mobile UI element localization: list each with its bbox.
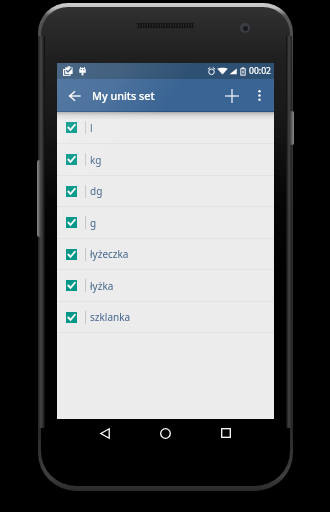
button[interactable]: g (57, 207, 274, 238)
staticText: dg (90, 184, 103, 198)
staticText: łyżeczka (90, 247, 129, 261)
staticText: łyżka (90, 279, 114, 293)
button[interactable]: szklanka (57, 302, 274, 332)
button[interactable]: Home (153, 419, 177, 447)
button[interactable]: Navigate up (63, 79, 86, 112)
staticText: My units set (92, 88, 155, 103)
button[interactable]: Back (93, 419, 117, 447)
staticText: l (90, 121, 93, 135)
button[interactable]: kg (57, 144, 274, 175)
button[interactable]: l (57, 112, 274, 143)
button[interactable]: łyżka (57, 270, 274, 301)
staticText: 00:02 (249, 65, 271, 77)
button[interactable]: Add (216, 79, 248, 112)
staticText: szklanka (90, 310, 131, 324)
staticText: kg (90, 153, 102, 167)
button[interactable]: Recent apps (214, 419, 238, 447)
button[interactable]: dg (57, 176, 274, 206)
button[interactable]: More options (248, 79, 270, 112)
button[interactable]: łyżeczka (57, 239, 274, 269)
staticText: g (90, 216, 97, 230)
